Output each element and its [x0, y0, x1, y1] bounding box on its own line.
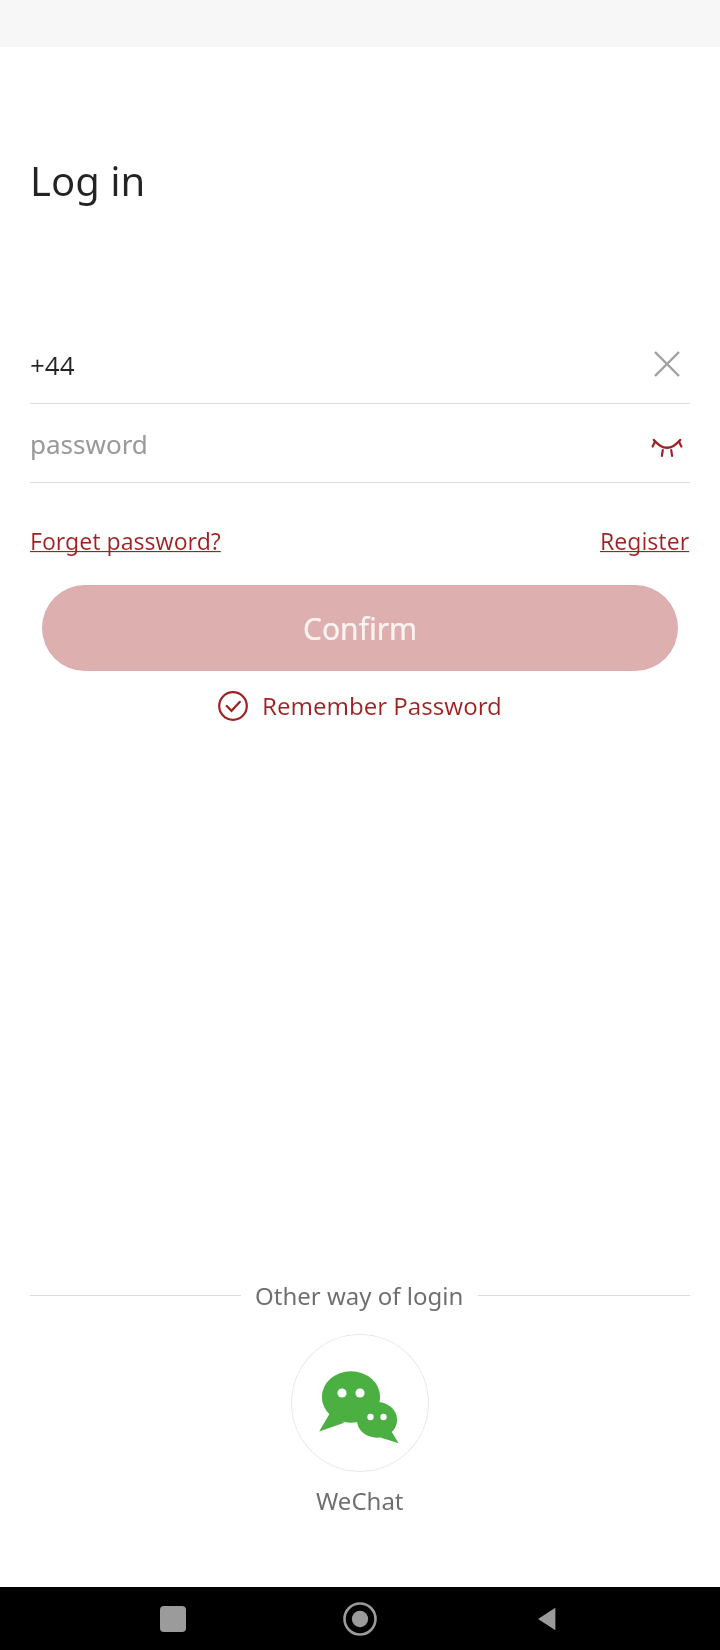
- staticText: WeChat: [316, 1484, 404, 1517]
- button[interactable]: Clear: [644, 341, 690, 387]
- button[interactable]: Home: [337, 1596, 383, 1642]
- button[interactable]: Log in with WeChat: [291, 1334, 429, 1472]
- staticText: Confirm: [303, 608, 418, 649]
- staticText: Log in: [30, 153, 146, 207]
- button[interactable]: Back: [524, 1596, 570, 1642]
- staticText: password: [30, 426, 148, 461]
- button[interactable]: Forget password?: [30, 525, 221, 556]
- staticText: Other way of login: [255, 1279, 464, 1312]
- button[interactable]: Show password: [644, 420, 690, 466]
- button[interactable]: Register: [600, 525, 690, 556]
- button[interactable]: Confirm: [42, 585, 678, 671]
- staticText: Remember Password: [262, 689, 502, 722]
- button[interactable]: Recents: [150, 1596, 196, 1642]
- staticText: +44: [30, 347, 75, 382]
- button[interactable]: Remember Password: [30, 689, 690, 722]
